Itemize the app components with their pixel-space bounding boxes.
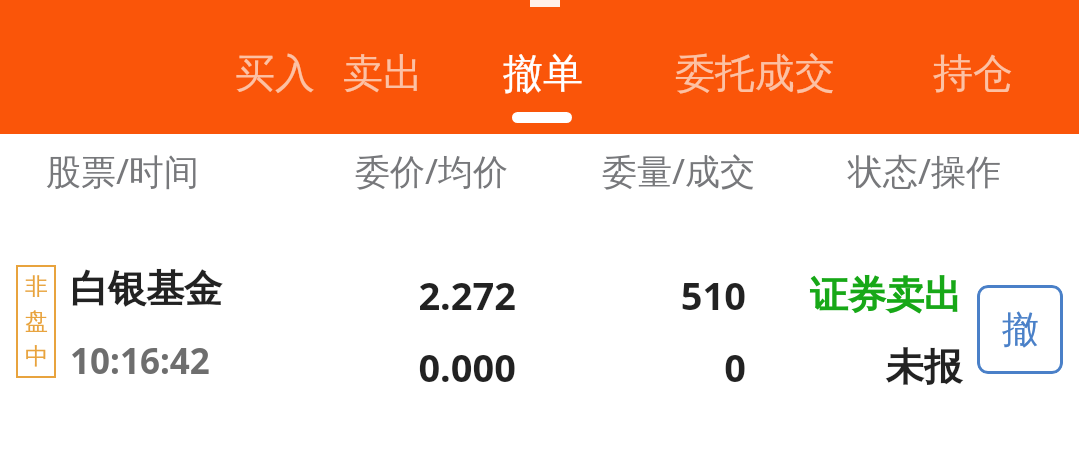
staticText: 盘 <box>25 307 48 336</box>
staticText: 持仓 <box>933 48 1013 98</box>
button[interactable]: 买入 <box>60 40 490 106</box>
staticText: 2.272 <box>418 269 516 321</box>
button[interactable]: 卖出 <box>275 40 490 106</box>
staticText: 0.000 <box>418 341 516 393</box>
staticText: 买入 <box>235 48 315 98</box>
staticText: 白银基金 <box>70 265 222 313</box>
staticText: 撤 <box>1002 306 1039 353</box>
button[interactable]: 非 <box>0 253 1079 383</box>
staticText: 撤单 <box>503 48 583 98</box>
staticText: 股票/时间 <box>46 147 200 195</box>
staticText: 委托成交 <box>675 48 835 98</box>
button[interactable]: 持仓 <box>910 40 1035 106</box>
button[interactable]: 撤单 <box>490 40 595 106</box>
button[interactable]: 撤单 <box>977 285 1063 374</box>
staticText: 卖出 <box>343 48 423 98</box>
staticText: 委量/成交 <box>602 147 756 195</box>
staticText: 证券卖出 <box>810 271 962 319</box>
staticText: 未报 <box>886 343 962 391</box>
staticText: 非 <box>25 272 48 301</box>
staticText: 0 <box>724 341 746 393</box>
staticText: 委价/均价 <box>355 147 509 195</box>
staticText: 状态/操作 <box>848 147 1002 195</box>
staticText: 510 <box>680 269 746 321</box>
staticText: 10:16:42 <box>70 337 210 385</box>
button[interactable]: 委托成交 <box>650 40 860 106</box>
staticText: 中 <box>25 342 48 371</box>
